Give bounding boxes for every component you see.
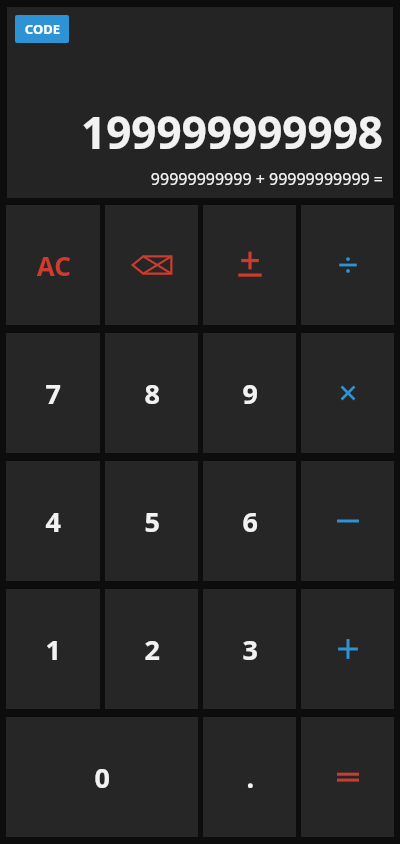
button[interactable]: Plus xyxy=(301,589,394,709)
staticText: 99999999999 + 99999999999 = xyxy=(150,168,383,190)
button[interactable]: AC xyxy=(6,205,100,325)
button[interactable]: 9 xyxy=(203,333,296,453)
staticText: 5 xyxy=(144,503,160,540)
button[interactable]: Plus minus sign toggle xyxy=(203,205,296,325)
button[interactable]: 3 xyxy=(203,589,296,709)
button[interactable]: 4 xyxy=(6,461,100,581)
staticText: 3 xyxy=(242,631,258,668)
staticText: . xyxy=(246,759,254,796)
staticText: 8 xyxy=(144,375,160,412)
button[interactable]: Equals xyxy=(301,717,394,837)
button[interactable]: Divide xyxy=(301,205,394,325)
staticText: 4 xyxy=(45,503,61,540)
staticText: AC xyxy=(36,248,71,283)
button[interactable]: 1 xyxy=(6,589,100,709)
button[interactable]: 2 xyxy=(105,589,198,709)
staticText: 7 xyxy=(45,375,61,412)
button[interactable]: . xyxy=(203,717,296,837)
button[interactable]: Minus xyxy=(301,461,394,581)
staticText: CODE xyxy=(24,20,60,38)
button[interactable]: 8 xyxy=(105,333,198,453)
button[interactable]: 5 xyxy=(105,461,198,581)
staticText: 199999999998 xyxy=(80,102,383,162)
staticText: 6 xyxy=(242,503,258,540)
button[interactable]: 0 xyxy=(6,717,198,837)
staticText: 2 xyxy=(144,631,160,668)
staticText: 1 xyxy=(45,631,61,668)
button[interactable]: 6 xyxy=(203,461,296,581)
staticText: 0 xyxy=(94,759,110,796)
button[interactable]: 7 xyxy=(6,333,100,453)
staticText: 9 xyxy=(242,375,258,412)
button[interactable]: Multiply xyxy=(301,333,394,453)
button[interactable]: Backspace xyxy=(105,205,198,325)
button[interactable]: CODE xyxy=(15,15,69,43)
